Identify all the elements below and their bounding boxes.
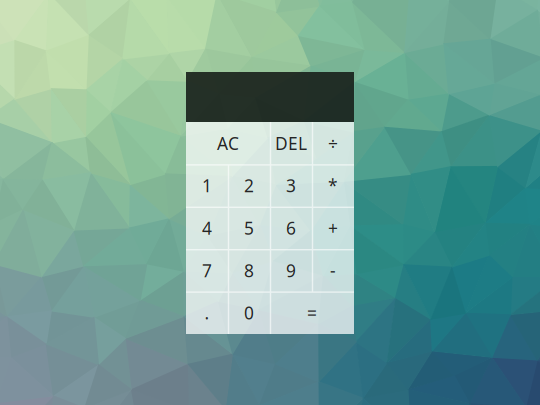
staticText: 0 [244, 301, 254, 324]
staticText: - [330, 259, 336, 282]
staticText: . [204, 301, 209, 324]
staticText: = [307, 301, 317, 324]
staticText: 5 [244, 216, 254, 239]
staticText: * [328, 174, 338, 197]
button[interactable]: = [270, 292, 354, 334]
staticText: 6 [286, 216, 296, 239]
staticText: 2 [244, 174, 254, 197]
button[interactable]: ÷ [312, 122, 354, 164]
button[interactable]: 3 [270, 164, 312, 207]
button[interactable]: 7 [186, 249, 228, 292]
button[interactable]: + [312, 207, 354, 249]
button[interactable]: DEL [270, 122, 312, 164]
staticText: 3 [286, 174, 296, 197]
button[interactable]: . [186, 292, 228, 334]
button[interactable]: - [312, 249, 354, 292]
staticText: 8 [244, 259, 254, 282]
staticText: DEL [275, 132, 307, 155]
staticText: 4 [202, 216, 212, 239]
button[interactable]: 6 [270, 207, 312, 249]
button[interactable]: 2 [228, 164, 270, 207]
button[interactable]: 5 [228, 207, 270, 249]
staticText: 1 [202, 174, 212, 197]
staticText: 9 [286, 259, 296, 282]
staticText: 7 [202, 259, 212, 282]
button[interactable]: * [312, 164, 354, 207]
button[interactable]: 1 [186, 164, 228, 207]
staticText: AC [217, 132, 239, 155]
staticText: ÷ [328, 132, 338, 155]
button[interactable]: 0 [228, 292, 270, 334]
staticText: + [328, 216, 338, 239]
button[interactable]: 9 [270, 249, 312, 292]
button[interactable]: 8 [228, 249, 270, 292]
button[interactable]: 4 [186, 207, 228, 249]
button[interactable]: AC [186, 122, 270, 164]
